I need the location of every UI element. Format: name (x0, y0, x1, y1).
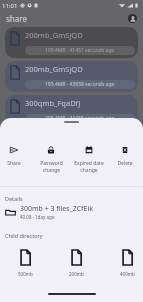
staticText: 500mb (18, 271, 33, 277)
staticText: Expired date change (74, 160, 104, 174)
button[interactable]: Delete (110, 146, 140, 167)
other: Share (10, 146, 18, 154)
staticText: Delete (117, 160, 133, 167)
staticText: share (6, 13, 27, 24)
staticText: 195.4MB · 43838 seconds ago (45, 81, 115, 88)
staticText: 400mb (120, 271, 135, 277)
button[interactable]: Expired date change (71, 146, 107, 174)
staticText: 11:01 (2, 2, 18, 10)
staticText: 300qmb_FqaDfJ (25, 98, 81, 108)
other: Password change (47, 146, 55, 154)
staticText: 200mb_GmSjQD (25, 64, 83, 74)
staticText: Password change (40, 160, 63, 174)
staticText: Share (7, 160, 21, 167)
staticText: 300mb + 3 files_ZCfEik (20, 204, 93, 214)
button[interactable]: 200mb (69, 249, 84, 277)
button[interactable]: Password change (36, 146, 66, 174)
button[interactable]: 200mb_GmSjQD (5, 27, 138, 58)
staticText: Details (5, 195, 23, 202)
button[interactable]: 400mb (120, 249, 135, 277)
button[interactable]: 300qmb_FqaDfJ (5, 95, 138, 126)
other: Delete (121, 146, 129, 154)
staticText: Child directory (5, 232, 43, 239)
button[interactable]: 200mb_GmSjQD (5, 61, 138, 92)
staticText: 200mb_GmSjQD (25, 30, 83, 40)
staticText: 195.4MB · 41451 seconds ago (45, 47, 115, 54)
staticText: 295.4MB · 44435 seconds ago (45, 115, 115, 122)
staticText: 200mb (69, 271, 84, 277)
other: Expired date change (85, 146, 93, 154)
button[interactable]: 300mb + 3 files_ZCfEik (0, 204, 143, 220)
button[interactable]: Share (0, 146, 29, 167)
button[interactable]: Account (128, 14, 137, 23)
staticText: 40.08 · 1day ago (20, 214, 55, 220)
button[interactable]: 500mb (18, 249, 33, 277)
